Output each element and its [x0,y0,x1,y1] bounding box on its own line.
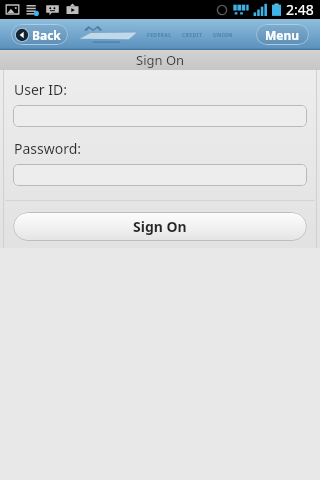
button[interactable]: Menu [256,24,309,45]
staticText: Back [32,27,61,43]
staticText: FEDERAL [147,32,172,39]
staticText: Sign On [136,51,185,69]
staticText: Menu [265,27,300,43]
staticText: Password: [14,139,82,158]
staticText: 2:48 [286,0,314,19]
staticText: Sign On [133,217,187,236]
staticText: UNION [213,32,233,39]
button[interactable]: Back [11,24,68,45]
button[interactable] [13,105,307,127]
button[interactable]: Sign On [13,212,307,241]
button[interactable] [13,164,307,186]
staticText: User ID: [14,80,67,99]
staticText: CREDIT [182,32,203,39]
